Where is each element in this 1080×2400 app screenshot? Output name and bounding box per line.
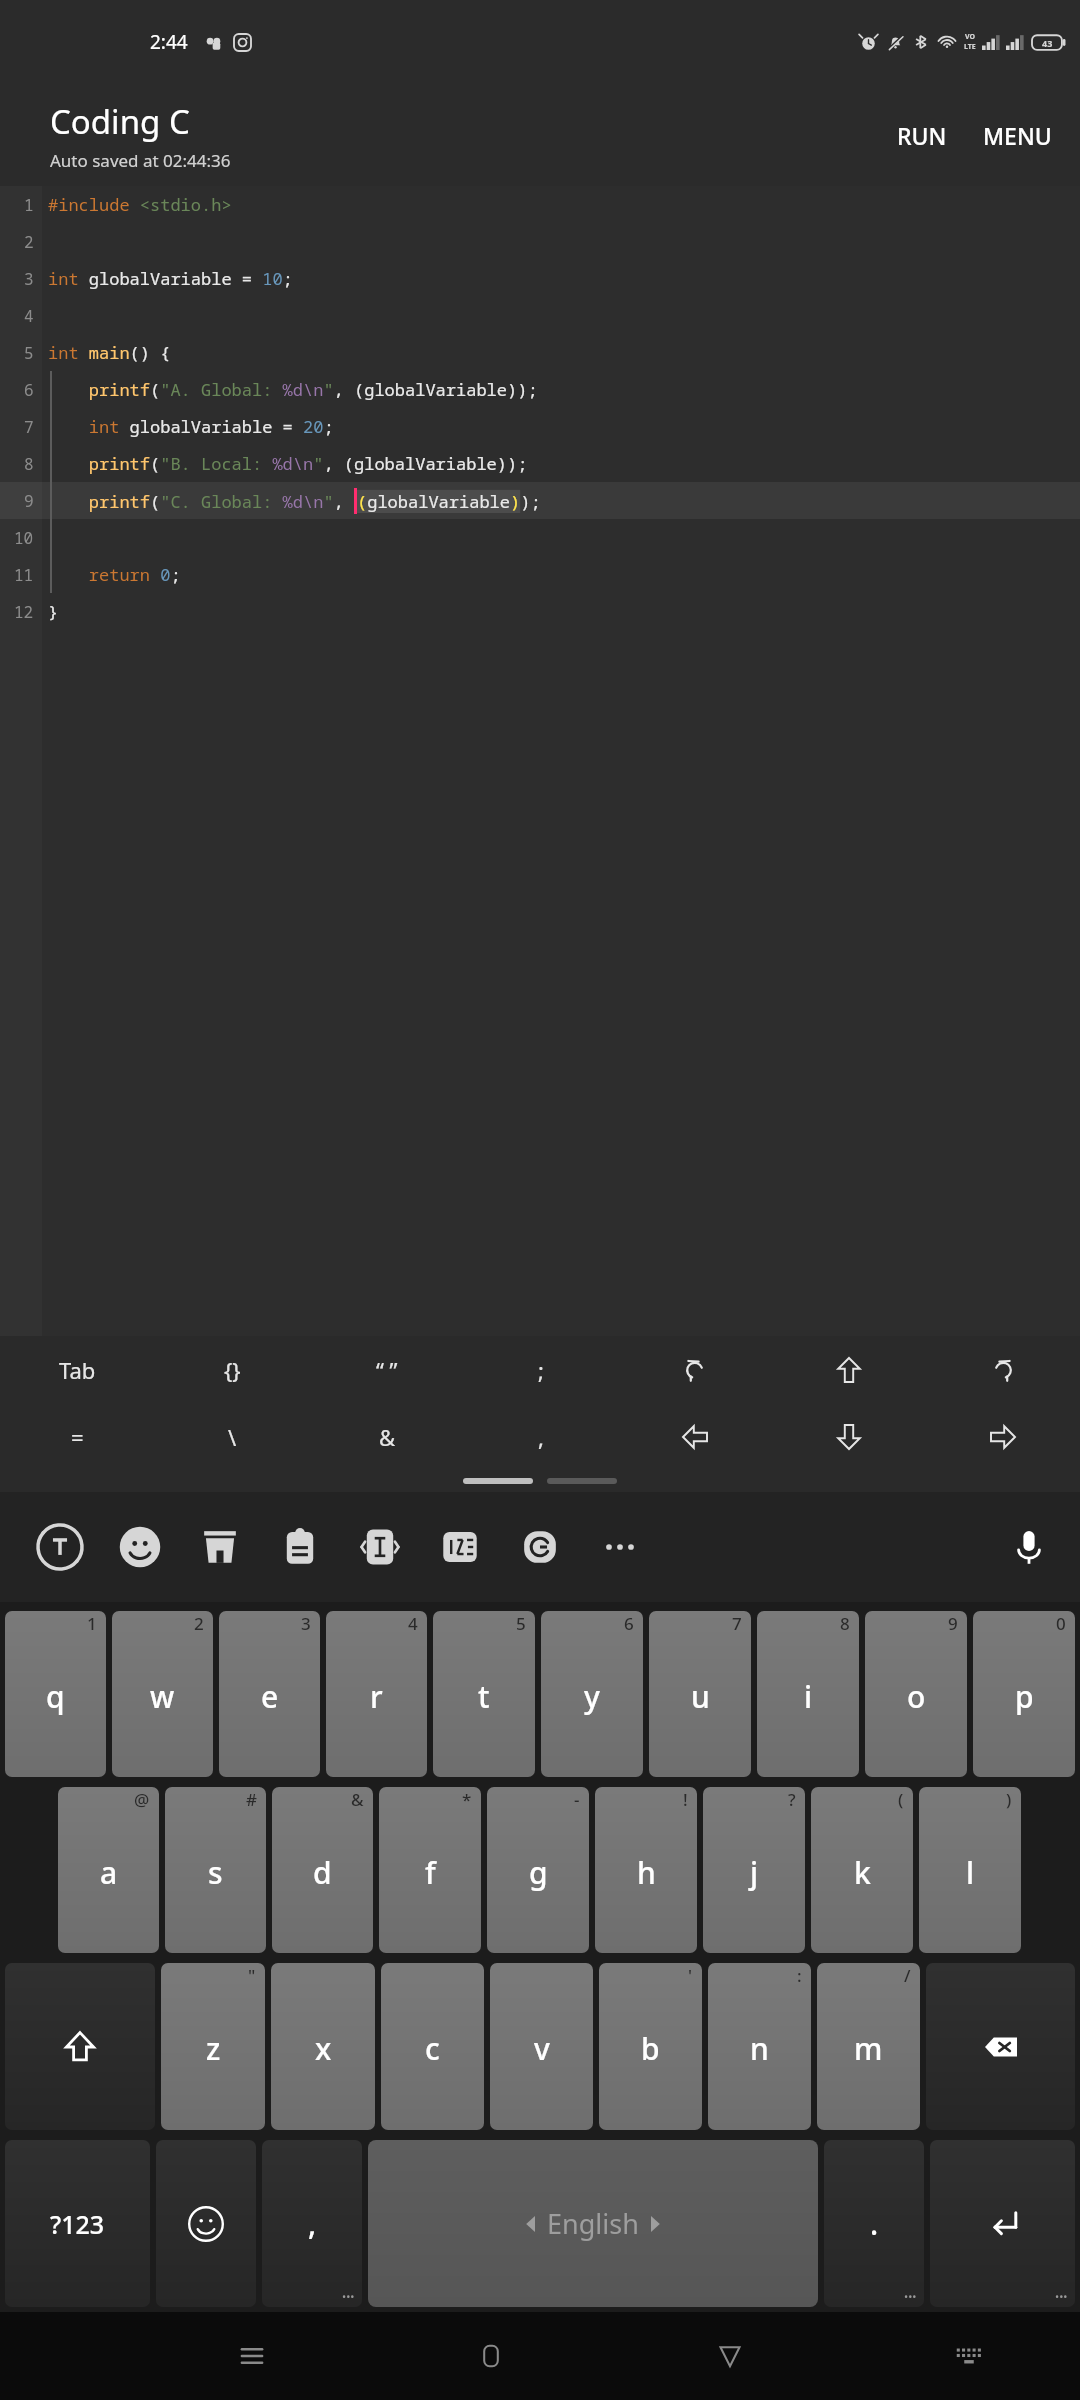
button[interactable]: 9 <box>865 1611 967 1777</box>
staticText: 3 <box>24 268 34 290</box>
button[interactable]: x <box>271 1963 375 2130</box>
button[interactable]: . <box>824 2140 924 2307</box>
button[interactable]: ) <box>919 1787 1021 1953</box>
button[interactable]: 3 <box>219 1611 320 1777</box>
button[interactable]: Emoji keyboard <box>156 2140 256 2307</box>
button[interactable]: ! <box>595 1787 697 1953</box>
button[interactable]: 5 <box>433 1611 535 1777</box>
staticText: & <box>351 1788 364 1811</box>
button[interactable]: Voice input <box>992 1510 1066 1584</box>
staticText: printf("B. Local: %d\n", (globalVariable… <box>48 452 528 475</box>
staticText: return 0; <box>48 563 181 586</box>
button[interactable]: Undo <box>618 1336 772 1403</box>
button[interactable]: ? <box>703 1787 805 1953</box>
button[interactable]: Home <box>455 2320 527 2392</box>
button[interactable]: , <box>464 1403 618 1470</box>
staticText: int globalVariable = 10; <box>48 267 293 290</box>
staticText: ••• <box>904 2289 917 2304</box>
button[interactable]: Down <box>772 1403 926 1470</box>
button[interactable]: ( <box>811 1787 913 1953</box>
button[interactable]: 2 <box>112 1611 213 1777</box>
button[interactable]: \ <box>155 1403 310 1470</box>
staticText: 9 <box>24 490 34 512</box>
button[interactable]: Numbers <box>420 1507 500 1587</box>
button[interactable]: Hide keyboard <box>933 2320 1005 2392</box>
button[interactable]: Shift <box>5 1963 155 2130</box>
staticText: 4 <box>24 305 34 327</box>
staticText: = <box>71 1422 84 1452</box>
button[interactable]: Text edit <box>340 1507 420 1587</box>
button[interactable]: 6 <box>541 1611 643 1777</box>
staticText: 10 <box>14 527 34 549</box>
staticText: : <box>797 1964 802 1987</box>
staticText: l <box>966 1852 975 1893</box>
button[interactable]: Space, English <box>368 2140 818 2307</box>
staticText: . <box>870 2203 879 2244</box>
staticText: RUN <box>897 120 947 151</box>
button[interactable]: # <box>165 1787 266 1953</box>
staticText: w <box>150 1676 175 1717</box>
button[interactable]: ' <box>599 1963 702 2130</box>
staticText: ! <box>683 1788 688 1811</box>
button[interactable]: v <box>490 1963 593 2130</box>
button[interactable]: Search <box>500 1507 580 1587</box>
staticText: " <box>248 1964 256 1987</box>
button[interactable]: & <box>272 1787 373 1953</box>
staticText: m <box>854 2028 883 2069</box>
button[interactable]: : <box>708 1963 811 2130</box>
staticText: 5 <box>516 1612 526 1635</box>
button[interactable]: Up <box>772 1336 926 1403</box>
button[interactable]: Redo <box>926 1336 1080 1403</box>
staticText: j <box>750 1852 759 1893</box>
staticText: ? <box>788 1788 796 1811</box>
staticText: int globalVariable = 20; <box>48 415 334 438</box>
button[interactable]: " <box>161 1963 265 2130</box>
button[interactable]: Left <box>618 1403 772 1470</box>
button[interactable]: = <box>0 1403 155 1470</box>
button[interactable]: Backspace <box>926 1963 1075 2130</box>
staticText: Tab <box>59 1355 96 1385</box>
button[interactable]: 4 <box>326 1611 427 1777</box>
staticText: ; <box>538 1355 544 1385</box>
staticText: ••• <box>342 2289 355 2304</box>
staticText: 6 <box>624 1612 634 1635</box>
button[interactable]: RUN <box>879 104 965 167</box>
staticText: 1 <box>87 1612 97 1635</box>
button[interactable]: Enter <box>930 2140 1075 2307</box>
button[interactable]: - <box>487 1787 589 1953</box>
button[interactable]: Back <box>694 2320 766 2392</box>
staticText: 2:44 <box>150 29 188 55</box>
button[interactable]: / <box>817 1963 920 2130</box>
staticText: Auto saved at 02:44:36 <box>50 149 231 172</box>
button[interactable]: Store <box>180 1507 260 1587</box>
button[interactable]: & <box>310 1403 464 1470</box>
button[interactable]: Clipboard <box>260 1507 340 1587</box>
staticText: r <box>370 1676 383 1717</box>
button[interactable]: “ ” <box>310 1336 464 1403</box>
staticText: “ ” <box>376 1355 398 1385</box>
button[interactable]: ?123 <box>5 2140 150 2307</box>
staticText: 2 <box>194 1612 204 1635</box>
button[interactable]: Tab <box>0 1336 155 1403</box>
button[interactable]: 8 <box>757 1611 859 1777</box>
button[interactable]: 0 <box>973 1611 1075 1777</box>
button[interactable]: MENU <box>965 104 1080 167</box>
staticText: s <box>208 1852 223 1893</box>
button[interactable]: 1 <box>5 1611 106 1777</box>
button[interactable]: Recent apps <box>216 2320 288 2392</box>
button[interactable]: @ <box>58 1787 159 1953</box>
button[interactable]: , <box>262 2140 362 2307</box>
button[interactable]: {} <box>155 1336 310 1403</box>
staticText: q <box>46 1676 65 1717</box>
staticText: & <box>379 1422 396 1452</box>
button[interactable]: * <box>379 1787 481 1953</box>
button[interactable]: 7 <box>649 1611 751 1777</box>
button[interactable]: Translate <box>20 1507 100 1587</box>
button[interactable]: c <box>381 1963 484 2130</box>
button[interactable]: Right <box>926 1403 1080 1470</box>
button[interactable]: More <box>580 1507 660 1587</box>
button[interactable]: ; <box>464 1336 618 1403</box>
staticText: x <box>315 2028 332 2069</box>
button[interactable]: Emoji <box>100 1507 180 1587</box>
staticText: printf("C. Global: %d\n", <box>48 490 354 513</box>
